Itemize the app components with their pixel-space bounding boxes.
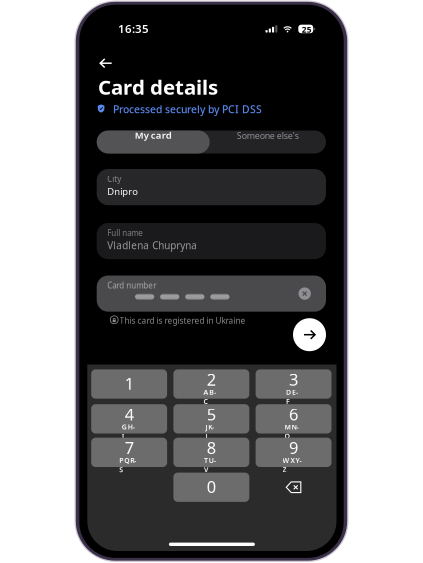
staticText: My card <box>135 129 172 141</box>
staticText: 9 <box>289 437 298 459</box>
staticText: 8 <box>207 437 216 459</box>
staticText: 0 <box>207 476 216 498</box>
staticText: TUV <box>204 456 219 465</box>
staticText: 2 <box>207 368 216 390</box>
staticText: Card details <box>98 73 218 100</box>
staticText: This card is registered in Ukraine <box>120 315 246 326</box>
button[interactable]: 2 <box>173 369 249 399</box>
button[interactable]: 8 <box>173 438 249 467</box>
staticText: ABC <box>203 387 219 397</box>
button[interactable]: 9 <box>256 438 331 467</box>
button[interactable]: Clear card number <box>294 283 316 305</box>
button[interactable]: Someone else's <box>210 130 326 153</box>
staticText: Someone else's <box>237 130 299 141</box>
staticText: 16:35 <box>118 21 149 36</box>
staticText: DEF <box>286 387 301 397</box>
staticText: Vladlena Chupryna <box>107 239 197 252</box>
staticText: Processed securely by PCI DSS <box>113 102 262 116</box>
staticText: 3 <box>289 368 298 390</box>
button[interactable]: 4 <box>91 404 167 433</box>
button[interactable]: Back <box>94 52 118 74</box>
staticText: Card number <box>107 280 156 291</box>
staticText: 25 <box>302 24 312 35</box>
button[interactable]: My card <box>97 130 210 153</box>
button[interactable]: 3 <box>256 369 331 399</box>
staticText: 1 <box>125 373 134 394</box>
staticText: JKL <box>205 422 217 431</box>
staticText: 6 <box>289 403 298 425</box>
button[interactable]: 7 <box>91 438 167 467</box>
staticText: PQRS <box>119 456 139 465</box>
button[interactable]: Delete <box>256 473 331 502</box>
staticText: Dnipro <box>107 185 138 198</box>
staticText: City <box>107 173 121 184</box>
button[interactable]: 1 <box>91 369 167 399</box>
staticText: GHI <box>122 422 137 431</box>
staticText: 4 <box>125 403 134 425</box>
button[interactable]: Continue <box>293 318 326 351</box>
button[interactable]: 5 <box>173 404 249 433</box>
staticText: 7 <box>125 437 134 459</box>
staticText: Full name <box>107 227 143 238</box>
button[interactable]: 0 <box>173 473 249 502</box>
staticText: MNO <box>285 422 302 431</box>
staticText: WXYZ <box>283 456 304 465</box>
button[interactable]: 6 <box>256 404 331 433</box>
staticText: 5 <box>207 403 216 425</box>
